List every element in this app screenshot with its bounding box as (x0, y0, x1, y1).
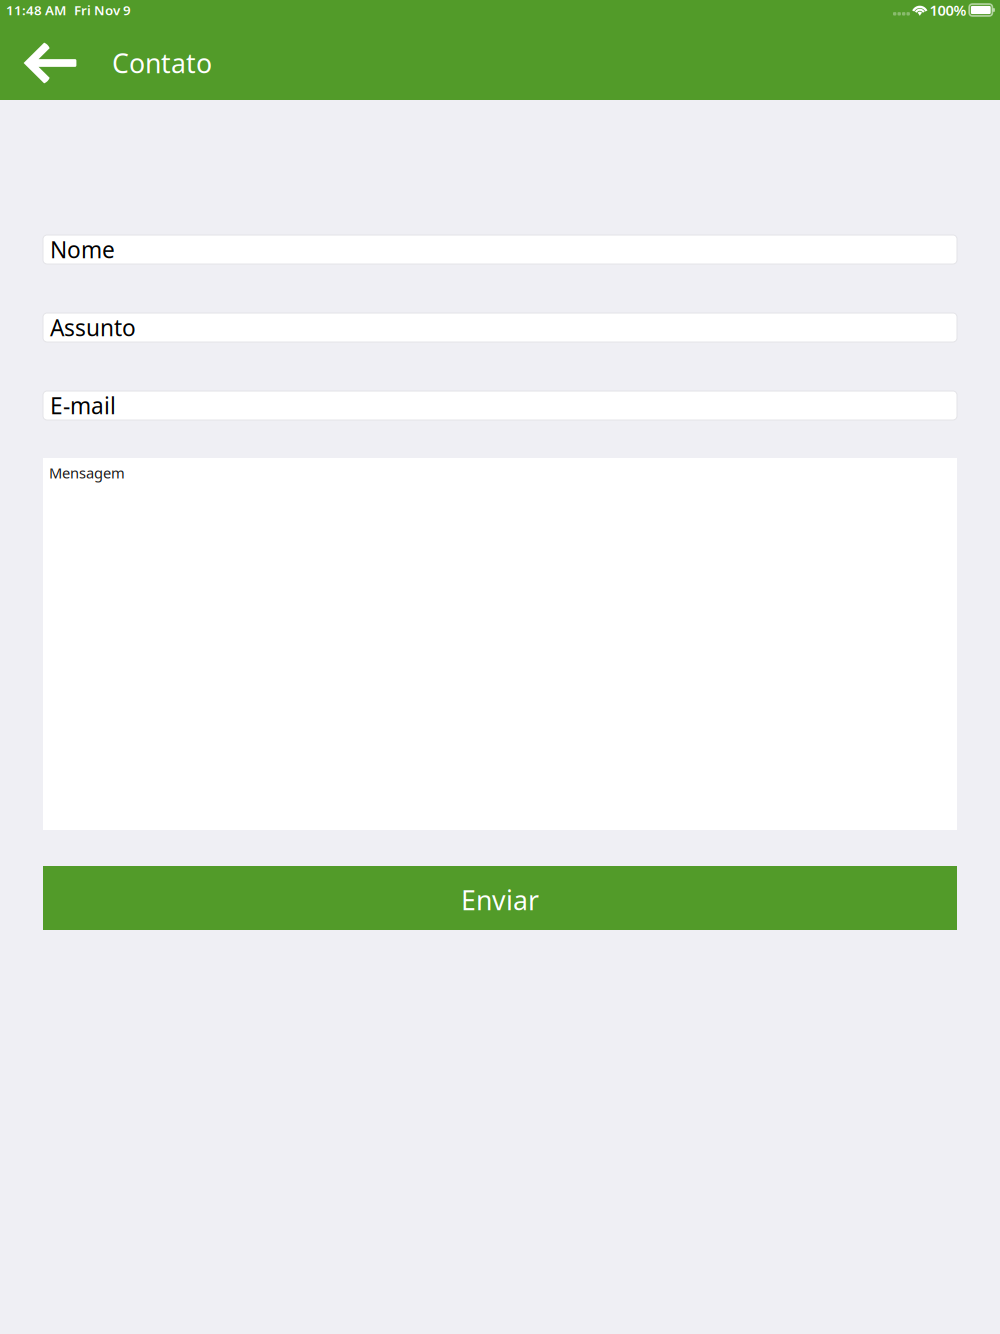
button[interactable]: Assunto (43, 313, 957, 342)
button[interactable]: Back (0, 20, 112, 100)
staticText: 11:48 AM (6, 1, 66, 19)
staticText: E-mail (50, 390, 116, 420)
staticText: Mensagem (49, 463, 125, 482)
staticText: Nome (50, 234, 115, 264)
staticText: Enviar (461, 882, 539, 918)
staticText: Assunto (50, 312, 136, 342)
button[interactable]: Mensagem (43, 458, 957, 830)
staticText: Contato (112, 45, 212, 81)
staticText: Fri Nov 9 (74, 1, 131, 19)
button[interactable]: Nome (43, 235, 957, 264)
button[interactable]: Enviar (43, 866, 957, 930)
button[interactable]: E-mail (43, 391, 957, 420)
staticText: 100% (930, 0, 967, 20)
